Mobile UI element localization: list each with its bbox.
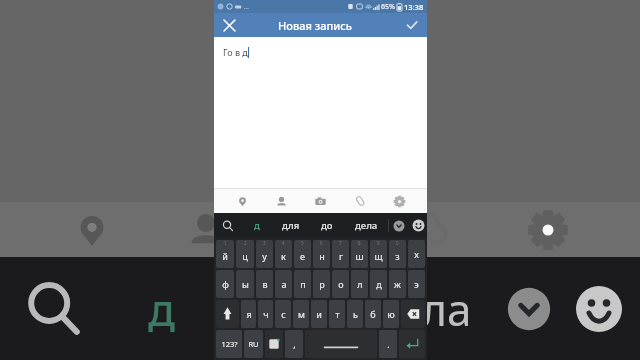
button[interactable]: Post settings [388,190,410,212]
staticText: ела [397,279,472,339]
staticText: , [293,338,296,350]
button[interactable]: Space [305,330,377,358]
staticText: 1 [224,240,227,246]
button[interactable]: о [332,270,349,298]
button[interactable]: RU [244,330,263,358]
button[interactable]: х [408,240,425,268]
button[interactable]: , [285,330,303,358]
button[interactable]: ч [258,300,273,328]
staticText: д [254,219,260,232]
staticText: о [338,278,344,290]
staticText: р [319,278,325,290]
button[interactable]: 2 [236,240,254,268]
staticText: т [335,308,340,320]
staticText: 123? [221,339,238,349]
staticText: д [376,278,382,290]
button[interactable]: а [275,270,292,298]
button[interactable]: Take photo [309,190,331,212]
staticText: для [282,219,300,232]
button[interactable]: с [275,300,291,328]
staticText: RU [248,339,259,349]
button[interactable]: Add location [231,190,253,212]
button[interactable]: . [379,330,397,358]
staticText: к [281,250,286,262]
button[interactable]: я [241,300,256,328]
staticText: 7 [339,240,342,246]
staticText: а [281,278,287,290]
staticText: 13:38 [404,2,424,12]
button[interactable]: 1 [216,240,234,268]
button[interactable]: 5 [294,240,311,268]
button[interactable]: 123? [216,330,242,358]
staticText: м [298,308,305,320]
button[interactable]: Close [219,15,239,35]
staticText: 2 [244,240,247,246]
staticText: б [370,308,376,320]
staticText: д [148,279,176,339]
button[interactable]: ь [347,300,363,328]
button[interactable]: р [313,270,330,298]
button[interactable]: 4 [275,240,292,268]
staticText: Го в д [223,46,248,58]
staticText: э [414,278,419,290]
staticText: ж [394,278,401,290]
staticText: н [319,250,325,262]
button[interactable]: 7 [332,240,349,268]
staticText: й [222,250,228,262]
staticText: п [300,278,306,290]
button[interactable]: п [294,270,311,298]
staticText: у [262,250,267,262]
button[interactable]: для [272,213,310,238]
button[interactable]: 8 [351,240,368,268]
button[interactable]: ж [389,270,406,298]
button[interactable]: т [329,300,345,328]
button[interactable]: Backspace [401,300,425,328]
staticText: 3 [263,240,266,246]
button[interactable]: 3 [256,240,273,268]
staticText: 0 [396,240,399,246]
staticText: и [316,308,322,320]
button[interactable]: дела [344,213,388,238]
staticText: ц [242,250,248,262]
staticText: щ [374,250,383,262]
button[interactable]: до [310,213,344,238]
button[interactable]: 6 [313,240,330,268]
staticText: ю [387,308,395,320]
staticText: 6 [320,240,323,246]
button[interactable]: ы [236,270,254,298]
staticText: Новая запись [278,18,352,33]
button[interactable]: д [242,213,272,238]
button[interactable]: ф [216,270,234,298]
button[interactable]: Save post [402,15,422,35]
button[interactable]: д [370,270,387,298]
staticText: в [262,278,268,290]
staticText: 4 [282,240,285,246]
button[interactable]: и [311,300,327,328]
button[interactable]: б [365,300,381,328]
button[interactable]: Emoji [409,213,427,238]
button[interactable]: л [351,270,368,298]
staticText: дела [355,219,378,232]
button[interactable]: в [256,270,273,298]
staticText: е [300,250,305,262]
button[interactable]: Keyboard layout [265,330,283,358]
staticText: 65% [381,2,395,12]
button[interactable]: м [293,300,309,328]
button[interactable]: More suggestions [389,213,409,238]
button[interactable]: э [408,270,425,298]
staticText: 5 [301,240,304,246]
staticText: ш [355,250,364,262]
button[interactable]: 0 [389,240,406,268]
staticText: ч [263,308,269,320]
button[interactable]: Enter [399,330,425,358]
button[interactable]: Tag friends [270,190,292,212]
button[interactable]: Attach file [349,190,371,212]
button[interactable]: 9 [370,240,387,268]
staticText: л [357,278,363,290]
staticText: ... [244,3,249,11]
button[interactable]: ю [383,300,399,328]
button[interactable]: Shift [216,300,239,328]
button[interactable]: Search [214,213,242,238]
staticText: с [281,308,286,320]
staticText: г [339,250,343,262]
